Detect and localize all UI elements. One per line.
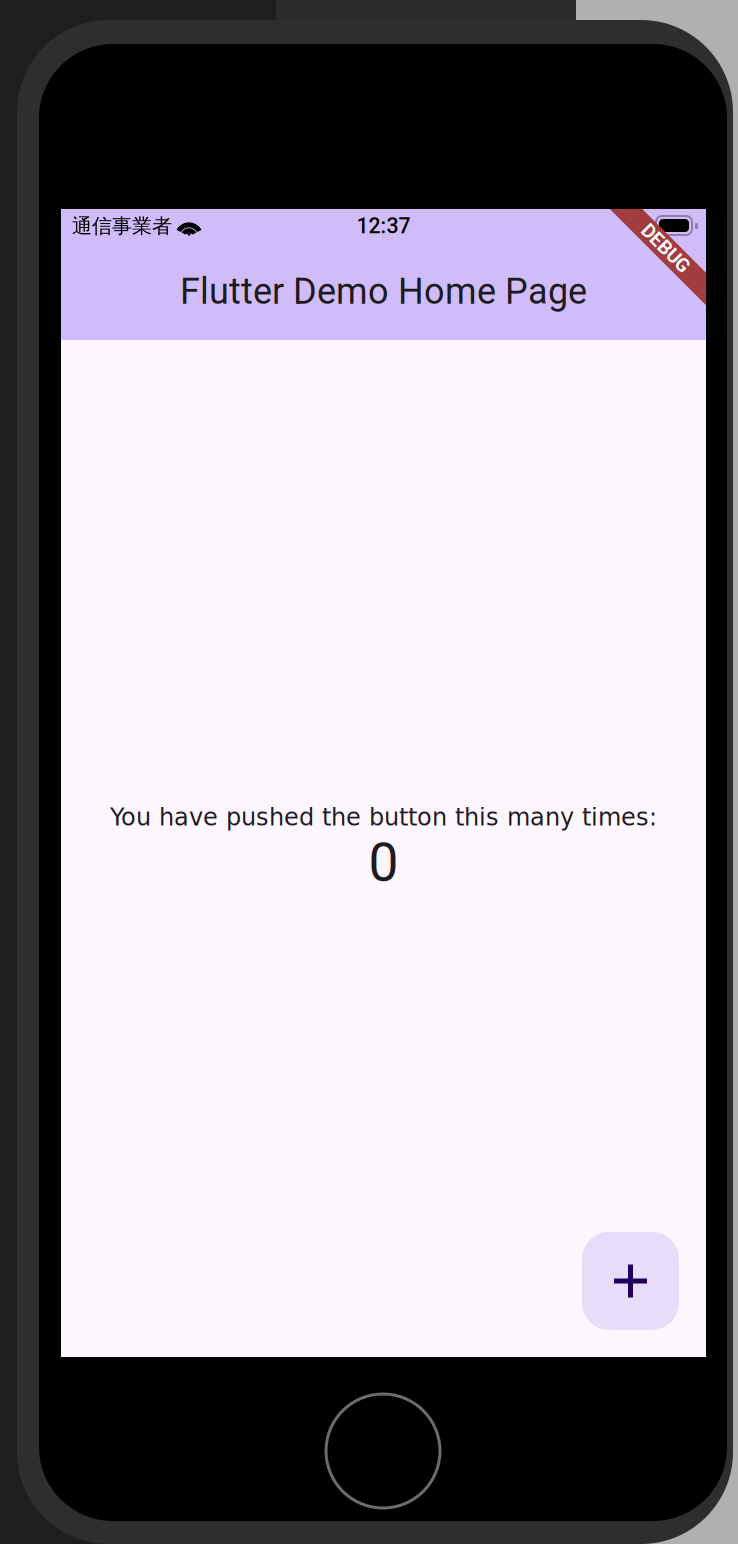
button[interactable]: Increment (582, 1232, 679, 1330)
staticText: 通信事業者 (72, 213, 172, 239)
staticText: 0 (368, 831, 398, 894)
staticText: DEBUG (635, 238, 695, 259)
staticText: 12:37 (356, 213, 410, 238)
staticText: Flutter Demo Home Page (180, 270, 587, 313)
staticText: You have pushed the button this many tim… (110, 803, 657, 831)
